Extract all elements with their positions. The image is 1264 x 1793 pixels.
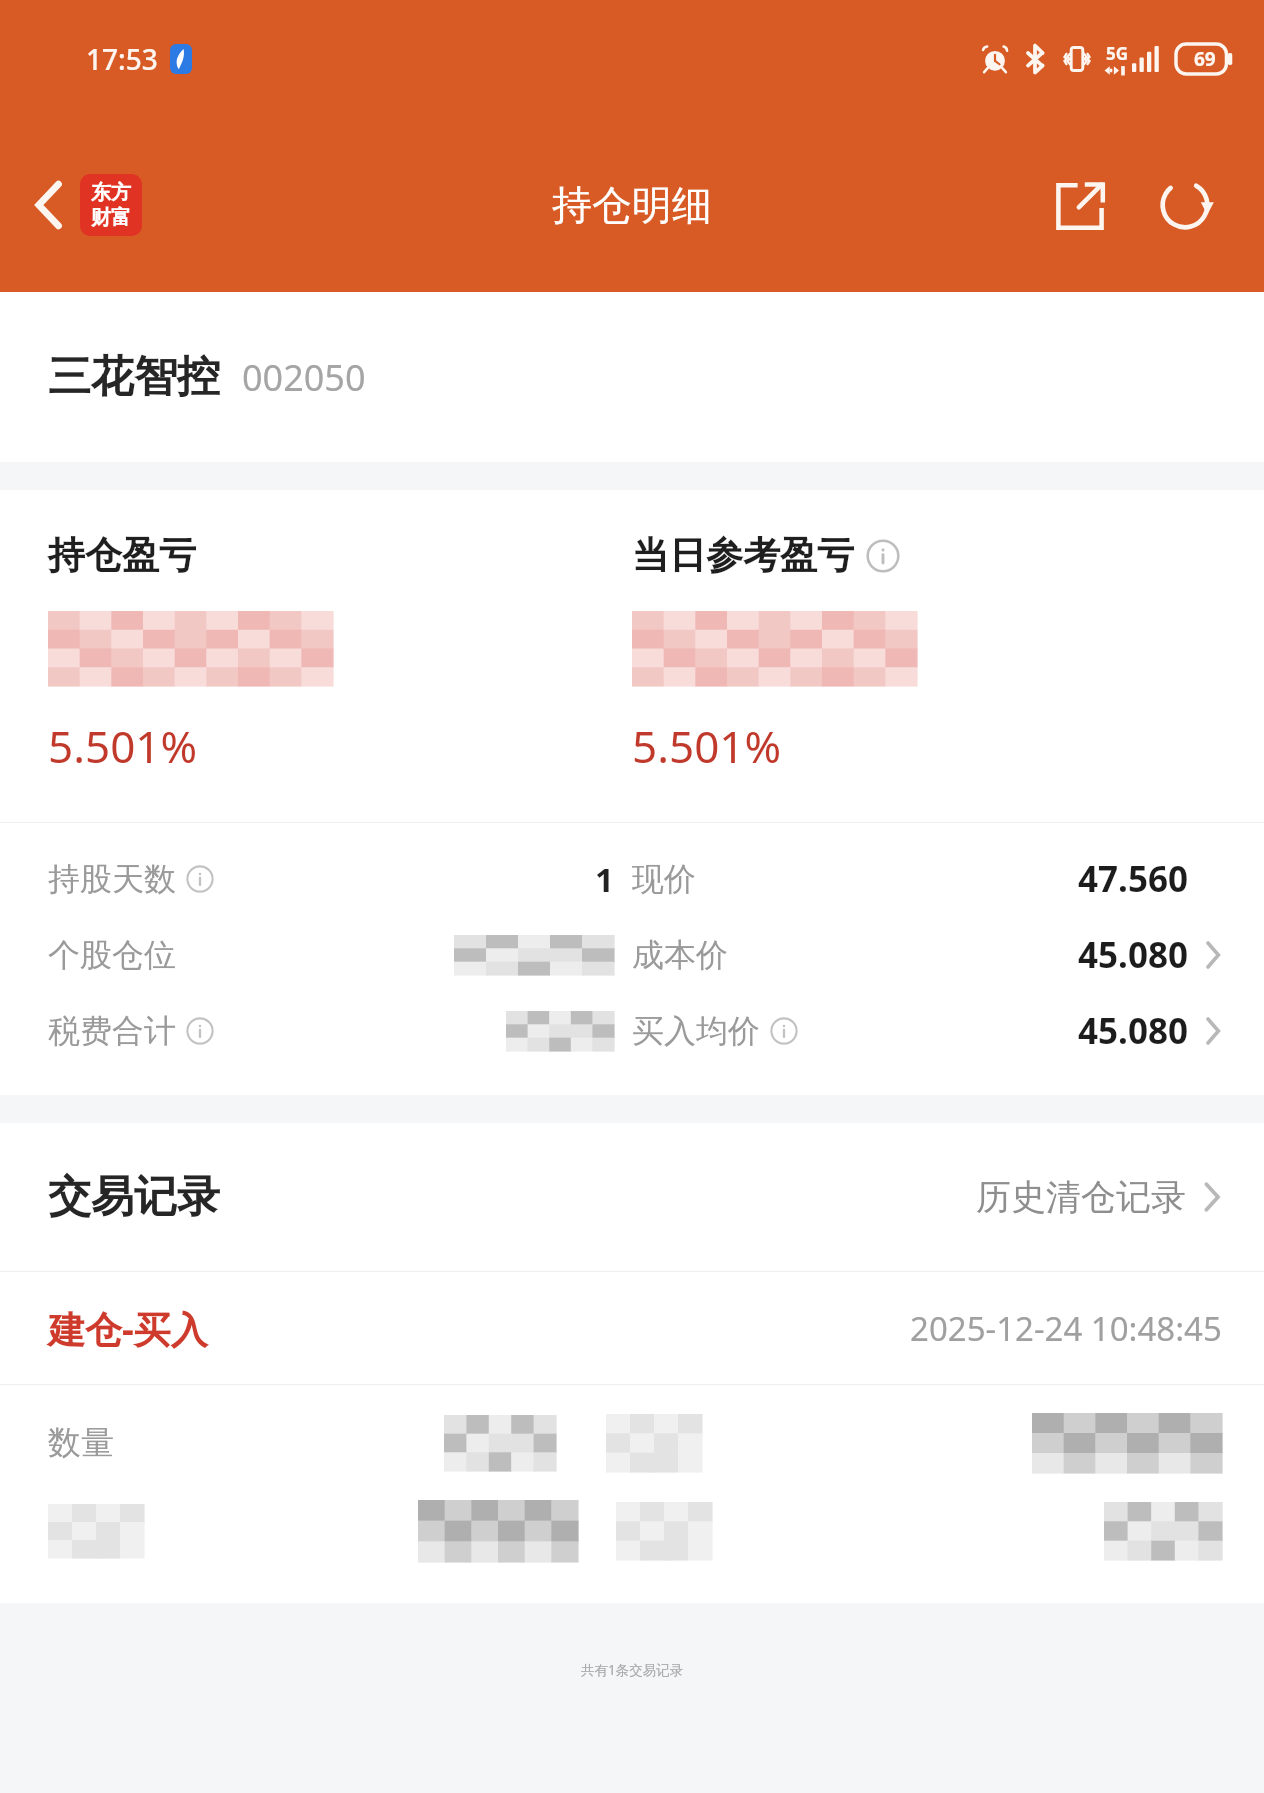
staticText: 成本价 [632,935,728,975]
button[interactable]: Share [1038,163,1122,247]
staticText: 5.501% [632,716,782,776]
staticText: 买入均价 [632,1011,760,1051]
staticText: 财富 [91,205,131,230]
staticText: 个股仓位 [48,935,176,975]
button[interactable]: 建仓-买入 [0,1272,1264,1603]
staticText: 45.080 [1078,1007,1188,1055]
staticText: 002050 [242,353,366,402]
staticText: 东方 [91,180,131,205]
staticText: 历史清仓记录 [976,1175,1186,1219]
staticText: 建仓-买入 [48,1303,208,1354]
staticText: 交易记录 [48,1170,220,1224]
staticText: 持仓盈亏 [48,532,196,579]
staticText: 数量 [48,1422,114,1464]
staticText: 1 [595,857,614,902]
staticText: 共有1条交易记录 [581,1661,684,1679]
staticText: 2025-12-24 10:48:45 [910,1306,1222,1351]
staticText: 税费合计 [48,1011,176,1051]
staticText: 17:53 [86,40,158,78]
button[interactable]: 买入均价 [632,993,1264,1069]
staticText: 69 [1194,46,1216,72]
button[interactable]: Back [22,164,152,246]
staticText: 三花智控 [48,350,220,404]
staticText: 持仓明细 [552,180,712,230]
button[interactable]: 三花智控 [0,292,1264,462]
button[interactable]: 成本价 [632,917,1264,993]
staticText: 当日参考盈亏 [632,532,854,579]
staticText: 5.501% [48,716,198,776]
staticText: 45.080 [1078,931,1188,979]
button[interactable]: Refresh [1142,162,1228,248]
button[interactable]: 历史清仓记录 [976,1161,1222,1233]
staticText: 5G [1106,42,1129,65]
staticText: 持股天数 [48,859,176,899]
staticText: 现价 [632,859,696,899]
staticText: 47.560 [1078,855,1188,903]
